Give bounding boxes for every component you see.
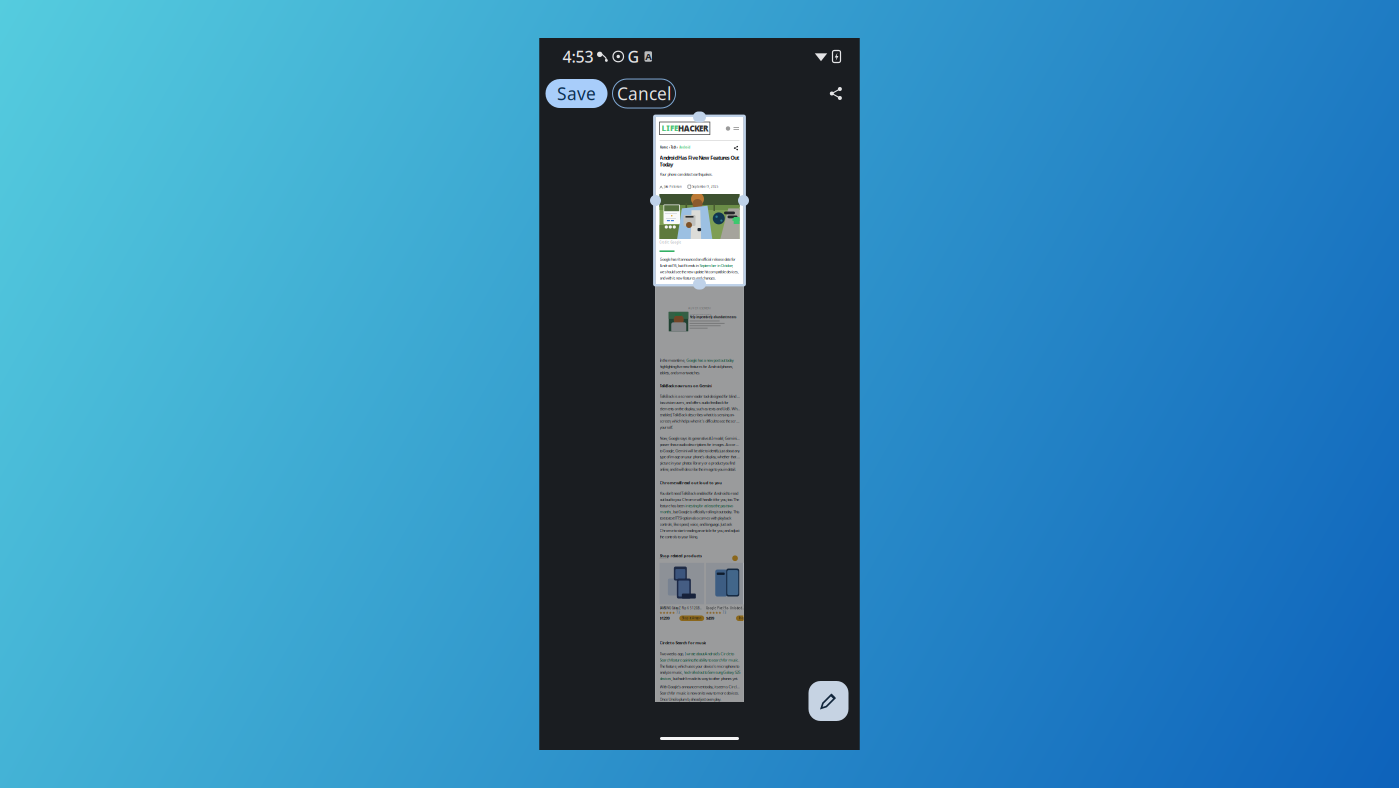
- button[interactable]: Cancel: [612, 79, 675, 108]
- staticText: Google hasn't announced an official rele…: [659, 257, 736, 262]
- staticText: Circle to Search for music: [659, 640, 706, 645]
- staticText: LIFE: [661, 123, 678, 134]
- staticText: Chrome will read out loud to you: [659, 480, 722, 485]
- staticText: controls, like speed, voice, and languag…: [659, 522, 732, 527]
- staticText: 73: [722, 611, 727, 614]
- staticText: G: [627, 46, 639, 67]
- staticText: September 9, 2025: [692, 185, 719, 188]
- staticText: tablets, and smartwatches.: [659, 370, 700, 375]
- staticText: With Google's announcement today, it see…: [659, 684, 740, 689]
- staticText: .: [738, 657, 739, 662]
- staticText: Today: [659, 161, 673, 168]
- staticText: TalkBack now runs on Gemini: [659, 383, 712, 388]
- staticText: September in October,: [699, 263, 733, 268]
- staticText: Google Pixel 9a - Unlocked…: [706, 606, 744, 610]
- staticText: power those audio descriptions for image…: [659, 442, 740, 447]
- staticText: Sponsored: [659, 557, 668, 559]
- staticText: Your phone can detect earthquakes.: [659, 171, 713, 177]
- staticText: low-vision users, and offers audio feedb…: [659, 400, 729, 405]
- button[interactable]: Share: [821, 79, 850, 108]
- staticText: $499: [706, 616, 714, 621]
- staticText: I wrote about Android's Circle to: [685, 651, 734, 656]
- staticText: 4:53: [562, 46, 593, 67]
- staticText: Once Unsilo plumb, ahead jest oven play.: [659, 696, 721, 702]
- staticText: online, and it will describe the image t…: [659, 467, 736, 472]
- staticText: Home › Tech ›: [659, 146, 679, 149]
- staticText: analyze music,: [659, 670, 684, 675]
- staticText: The feature, which uses your device's mi…: [659, 663, 739, 669]
- staticText: TalkBack is a screen reader tool designe…: [659, 393, 740, 399]
- staticText: had rolled out to Samsung Galaxy S25: [684, 670, 740, 675]
- button[interactable]: Save: [545, 79, 607, 108]
- staticText: Credit: Google: [659, 241, 681, 244]
- staticText: type of image on your phone's display, w…: [659, 454, 740, 459]
- staticText: A: [645, 50, 651, 63]
- staticText: Android: [679, 146, 691, 149]
- staticText: we should see the new update hit compati…: [659, 269, 739, 274]
- staticText: Chrome to start reading an article for y…: [659, 528, 739, 533]
- staticText: picture in your photos library or a prod…: [659, 460, 735, 466]
- staticText: Search feature gaining the ability to se…: [659, 657, 738, 662]
- staticText: Cancel: [617, 82, 671, 105]
- staticText: in testing for at least the past two: [685, 503, 733, 508]
- staticText: enabled, TalkBack describes what it is s…: [659, 412, 734, 417]
- staticText: 73: [675, 611, 680, 614]
- staticText: ADVERTISEMENT: [688, 306, 711, 310]
- staticText: the controls to your liking.: [659, 534, 698, 539]
- button[interactable]: Edit: [808, 681, 848, 721]
- staticText: and with it, new features and changes.: [659, 275, 716, 280]
- staticText: Android 16, but if it ends in: [659, 263, 699, 268]
- staticText: BY CAITLIN LAWRENCE · SCIENCE AND MONEY: [690, 313, 712, 315]
- staticText: feature has been: [659, 503, 685, 508]
- staticText: , but hadn't made its way to other phone…: [671, 676, 738, 681]
- staticText: to Google, Gemini will be able to identi…: [659, 448, 740, 453]
- staticText: yourself.: [659, 425, 673, 430]
- staticText: Shop at Amazon: [682, 616, 702, 620]
- staticText: In the meantime,: [659, 357, 686, 363]
- staticText: Now, Google says its generative AI model…: [659, 435, 740, 441]
- staticText: Jake Peterson: [664, 185, 682, 188]
- staticText: out loud to you: Chrome will handle it f…: [659, 497, 739, 502]
- staticText: Save: [557, 82, 596, 105]
- staticText: Help imperatively abundant means: [690, 315, 736, 319]
- staticText: Android Has Five New Features Out: [659, 154, 739, 161]
- staticText: You don't need TalkBack enabled for Andr…: [659, 490, 738, 496]
- staticText: screen, which helps when it's difficult …: [659, 418, 740, 424]
- staticText: months: [659, 509, 671, 514]
- staticText: highlighting five new features for Andro…: [659, 364, 733, 369]
- staticText: elements on the display, such as texts a…: [659, 406, 740, 411]
- staticText: Search for music is now on its way to mo…: [659, 690, 739, 695]
- staticText: SAMSUNG Galaxy Z Flip 6 512GB…: [659, 606, 702, 610]
- staticText: Shop at: [739, 616, 748, 620]
- staticText: text-to-text (TTS) option also comes wit…: [659, 515, 731, 521]
- staticText: HACKER: [678, 123, 708, 134]
- staticText: Google has a new post out today: [686, 357, 734, 363]
- staticText: Shop related products: [659, 553, 702, 558]
- staticText: devices: [659, 676, 671, 681]
- staticText: $1299: [659, 616, 669, 621]
- staticText: , but Google is officially rolling it ou…: [671, 509, 740, 514]
- staticText: Two weeks ago,: [659, 651, 685, 656]
